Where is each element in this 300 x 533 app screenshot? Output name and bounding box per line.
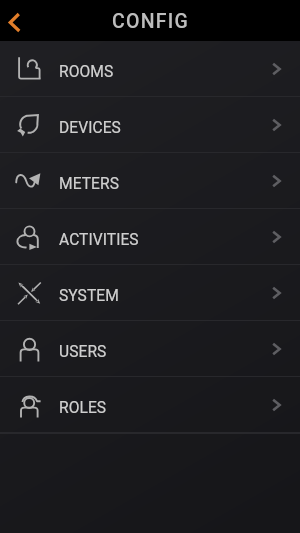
staticText: ROLES (59, 399, 107, 417)
button[interactable]: ACTIVITIES (0, 209, 300, 265)
staticText: ROOMS (59, 63, 114, 81)
staticText: METERS (59, 175, 119, 193)
staticText: USERS (59, 343, 107, 361)
button[interactable]: DEVICES (0, 97, 300, 153)
button[interactable]: USERS (0, 321, 300, 377)
button[interactable]: METERS (0, 153, 300, 209)
staticText: DEVICES (59, 119, 121, 137)
staticText: CONFIG (112, 10, 189, 33)
button[interactable]: ROOMS (0, 41, 300, 97)
button[interactable]: Back (0, 1, 40, 41)
button[interactable]: SYSTEM (0, 265, 300, 321)
staticText: SYSTEM (59, 287, 119, 305)
staticText: ACTIVITIES (59, 231, 139, 249)
button[interactable]: ROLES (0, 377, 300, 433)
